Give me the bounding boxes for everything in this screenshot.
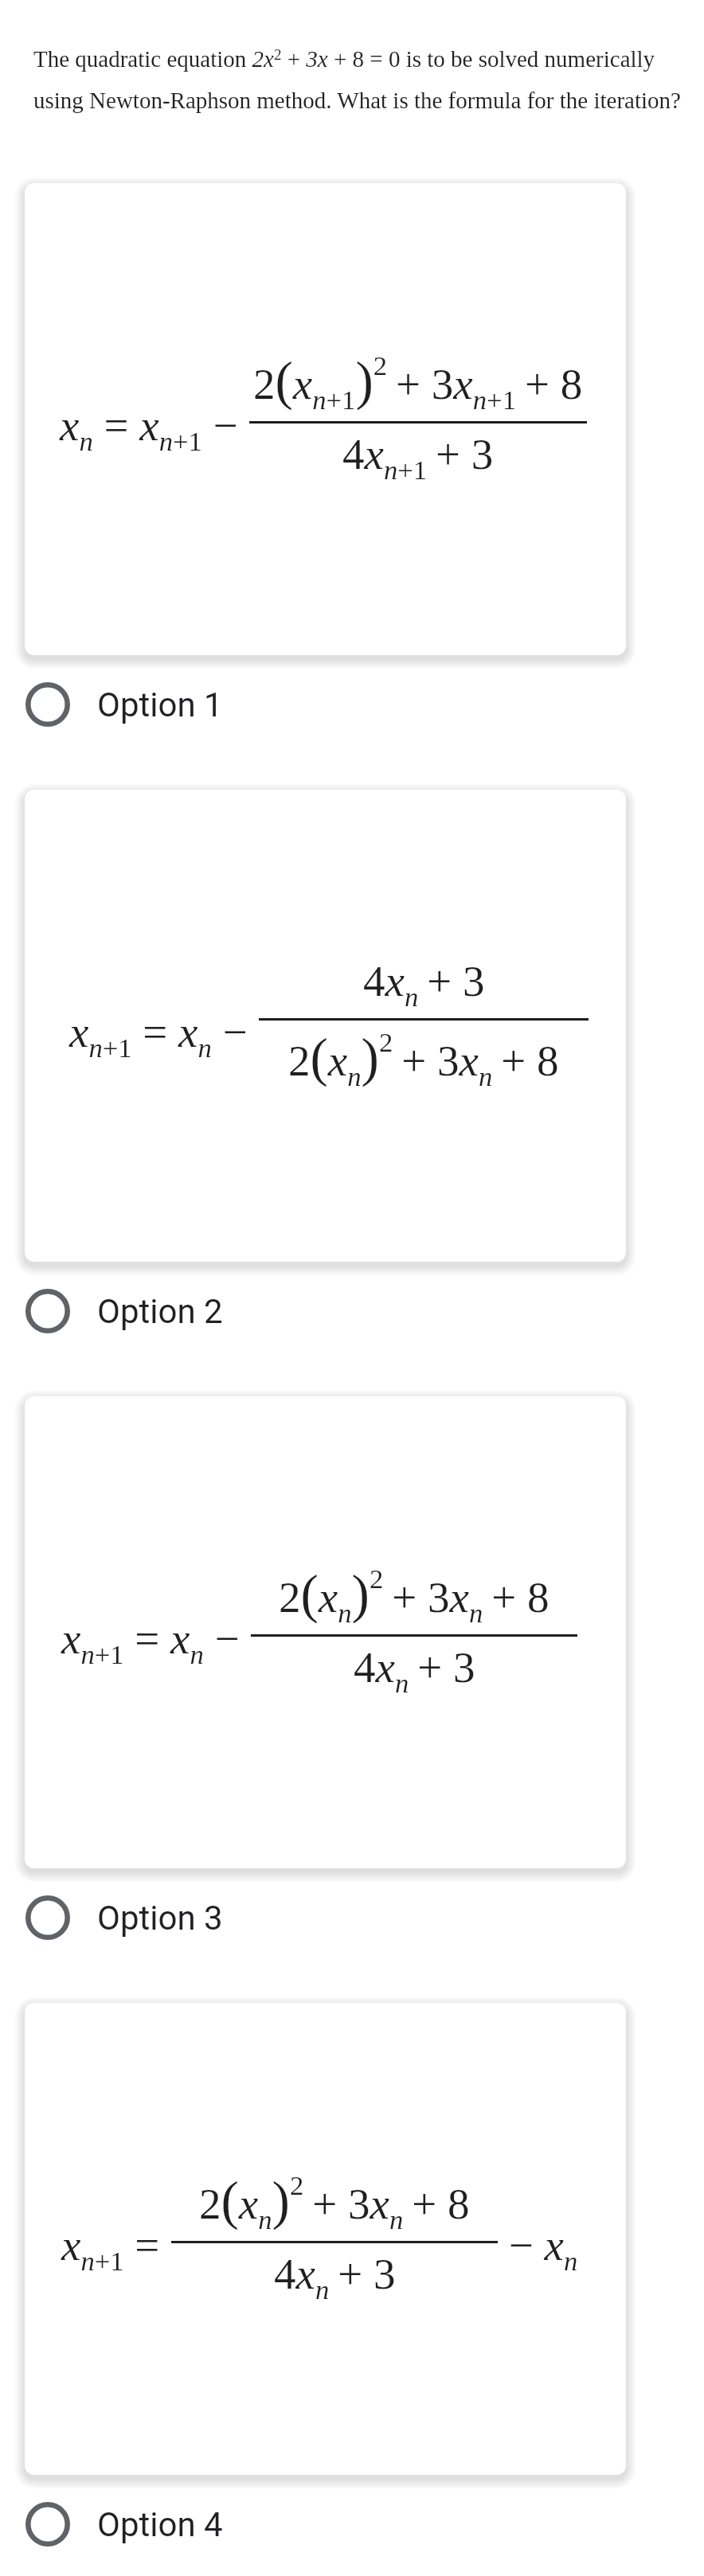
- staticText: 2(xn)2 + 3xn + 8: [279, 1563, 550, 1628]
- staticText: xn+1 = xn −: [61, 1614, 251, 1669]
- staticText: 4xn+1 + 3: [342, 430, 494, 485]
- staticText: 2(xn+1)2 + 3xn+1 + 8: [253, 350, 583, 415]
- staticText: xn+1 = xn −: [69, 1008, 259, 1063]
- staticText: Option 4: [97, 2505, 223, 2544]
- button[interactable]: Option 2: [0, 1262, 704, 1360]
- staticText: The quadratic equation 2x2 + 3x + 8 = 0 …: [33, 46, 696, 114]
- button[interactable]: Option 4: [0, 2475, 704, 2574]
- staticText: 4xn + 3: [363, 957, 485, 1012]
- staticText: − xn: [498, 2221, 578, 2276]
- button[interactable]: Option 1: [0, 655, 704, 754]
- staticText: Option 2: [97, 1292, 223, 1331]
- staticText: 2(xn)2 + 3xn + 8: [199, 2170, 470, 2234]
- button[interactable]: Option 3: [0, 1868, 704, 1967]
- staticText: 4xn + 3: [274, 2250, 396, 2305]
- staticText: 4xn + 3: [354, 1643, 475, 1698]
- staticText: Option 3: [97, 1899, 223, 1938]
- staticText: xn+1 =: [61, 2221, 171, 2276]
- staticText: Option 1: [97, 685, 223, 724]
- staticText: 2(xn)2 + 3xn + 8: [288, 1027, 559, 1091]
- staticText: xn = xn+1 −: [60, 401, 249, 456]
